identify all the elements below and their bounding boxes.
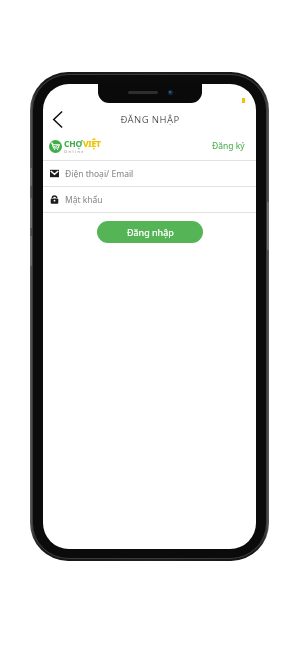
staticText: Điện thoại/ Email — [65, 168, 134, 180]
button[interactable]: Điện thoại/ Email — [43, 161, 256, 186]
staticText: O n l i n e — [64, 149, 84, 154]
staticText: Mật khẩu — [65, 194, 103, 206]
staticText: VIỆT — [83, 138, 101, 150]
staticText: Đăng nhập — [127, 226, 174, 238]
staticText: CHỢ — [64, 138, 83, 150]
staticText: ĐĂNG NHẬP — [120, 113, 180, 126]
button[interactable]: Đăng nhập — [97, 221, 203, 243]
staticText: Đăng ký — [212, 140, 245, 152]
button[interactable]: Mật khẩu — [43, 187, 256, 212]
button[interactable]: Back — [43, 106, 71, 132]
button[interactable]: Đăng ký — [209, 137, 248, 155]
